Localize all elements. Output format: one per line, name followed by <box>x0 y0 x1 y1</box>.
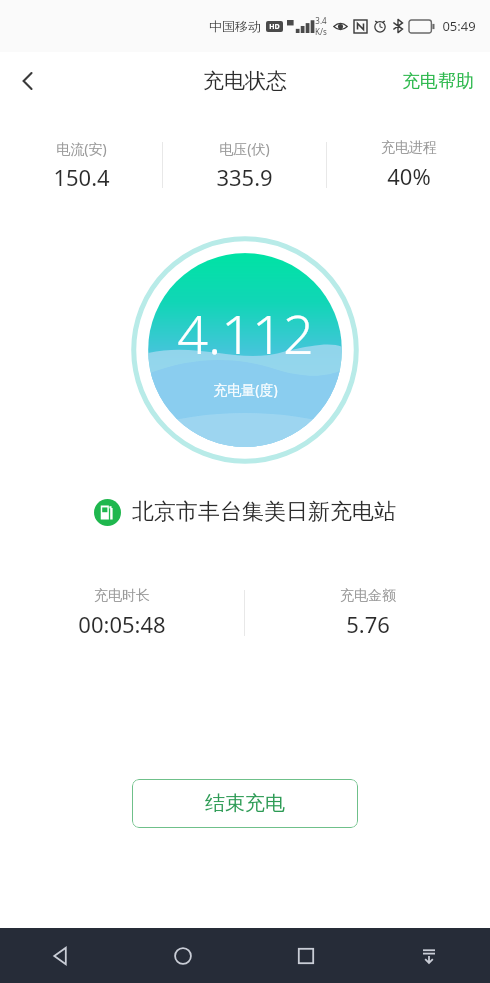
staticText: 150.4 <box>53 162 110 192</box>
staticText: 充电状态 <box>203 68 287 94</box>
staticText: 充电金额 <box>340 587 396 605</box>
staticText: 5.76 <box>346 609 390 639</box>
staticText: 00:05:48 <box>78 609 166 639</box>
staticText: 335.9 <box>216 162 273 192</box>
staticText: 充电时长 <box>94 587 150 605</box>
staticText: HD <box>269 22 280 32</box>
staticText: 北京市丰台集美日新充电站 <box>132 498 396 526</box>
button[interactable]: 北京市丰台集美日新充电站 <box>0 492 490 532</box>
staticText: 3.4 <box>315 15 327 26</box>
staticText: 充电进程 <box>381 139 437 157</box>
staticText: 电流(安) <box>56 139 107 158</box>
button[interactable]: Hide navigation bar <box>367 928 490 983</box>
button[interactable]: Back <box>0 928 122 983</box>
staticText: 40% <box>387 161 431 191</box>
button[interactable]: Back <box>0 52 56 110</box>
staticText: K/s <box>315 26 327 37</box>
staticText: 结束充电 <box>205 791 285 816</box>
button[interactable]: Recents <box>244 928 367 983</box>
staticText: 电压(伏) <box>219 139 270 158</box>
staticText: 中国移动 <box>209 18 261 34</box>
staticText: 05:49 <box>442 17 476 35</box>
staticText: 充电帮助 <box>402 70 474 93</box>
staticText: 充电量(度) <box>213 380 278 399</box>
button[interactable]: 充电帮助 <box>386 52 490 110</box>
button[interactable]: 结束充电 <box>132 779 358 828</box>
staticText: 4.112 <box>177 296 314 370</box>
button[interactable]: Home <box>122 928 244 983</box>
